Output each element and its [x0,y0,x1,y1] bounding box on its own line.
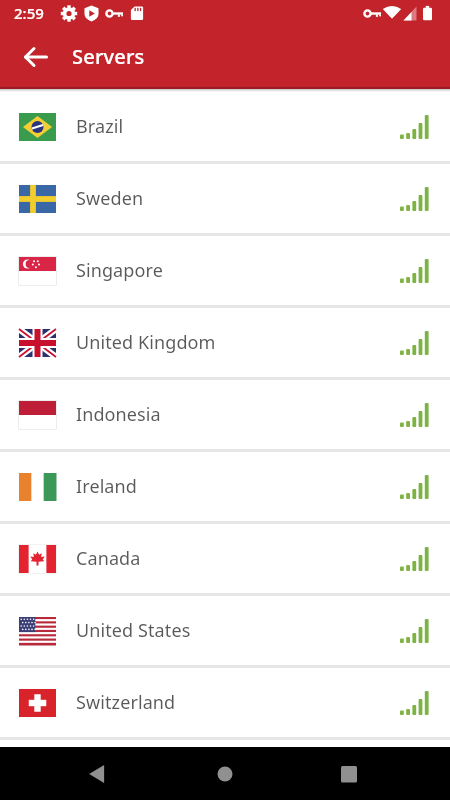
staticText: Indonesia [76,402,161,427]
button[interactable]: Ireland [0,452,450,524]
button[interactable]: Brazil [0,92,450,164]
staticText: Switzerland [76,690,176,715]
button[interactable]: Singapore [0,236,450,308]
button[interactable] [84,762,108,786]
staticText: 2:59 [14,3,44,23]
button[interactable]: Sweden [0,164,450,236]
button[interactable] [14,35,58,79]
button[interactable]: Switzerland [0,668,450,740]
button[interactable]: Indonesia [0,380,450,452]
staticText: Canada [76,546,141,571]
staticText: Singapore [76,258,163,283]
staticText: Sweden [76,186,144,211]
staticText: United States [76,618,191,643]
button[interactable] [213,762,237,786]
button[interactable]: United Kingdom [0,308,450,380]
button[interactable] [337,762,361,786]
staticText: Servers [72,43,145,70]
staticText: Brazil [76,114,124,139]
button[interactable]: Canada [0,524,450,596]
staticText: Ireland [76,474,137,499]
button[interactable]: United States [0,596,450,668]
staticText: United Kingdom [76,330,216,355]
